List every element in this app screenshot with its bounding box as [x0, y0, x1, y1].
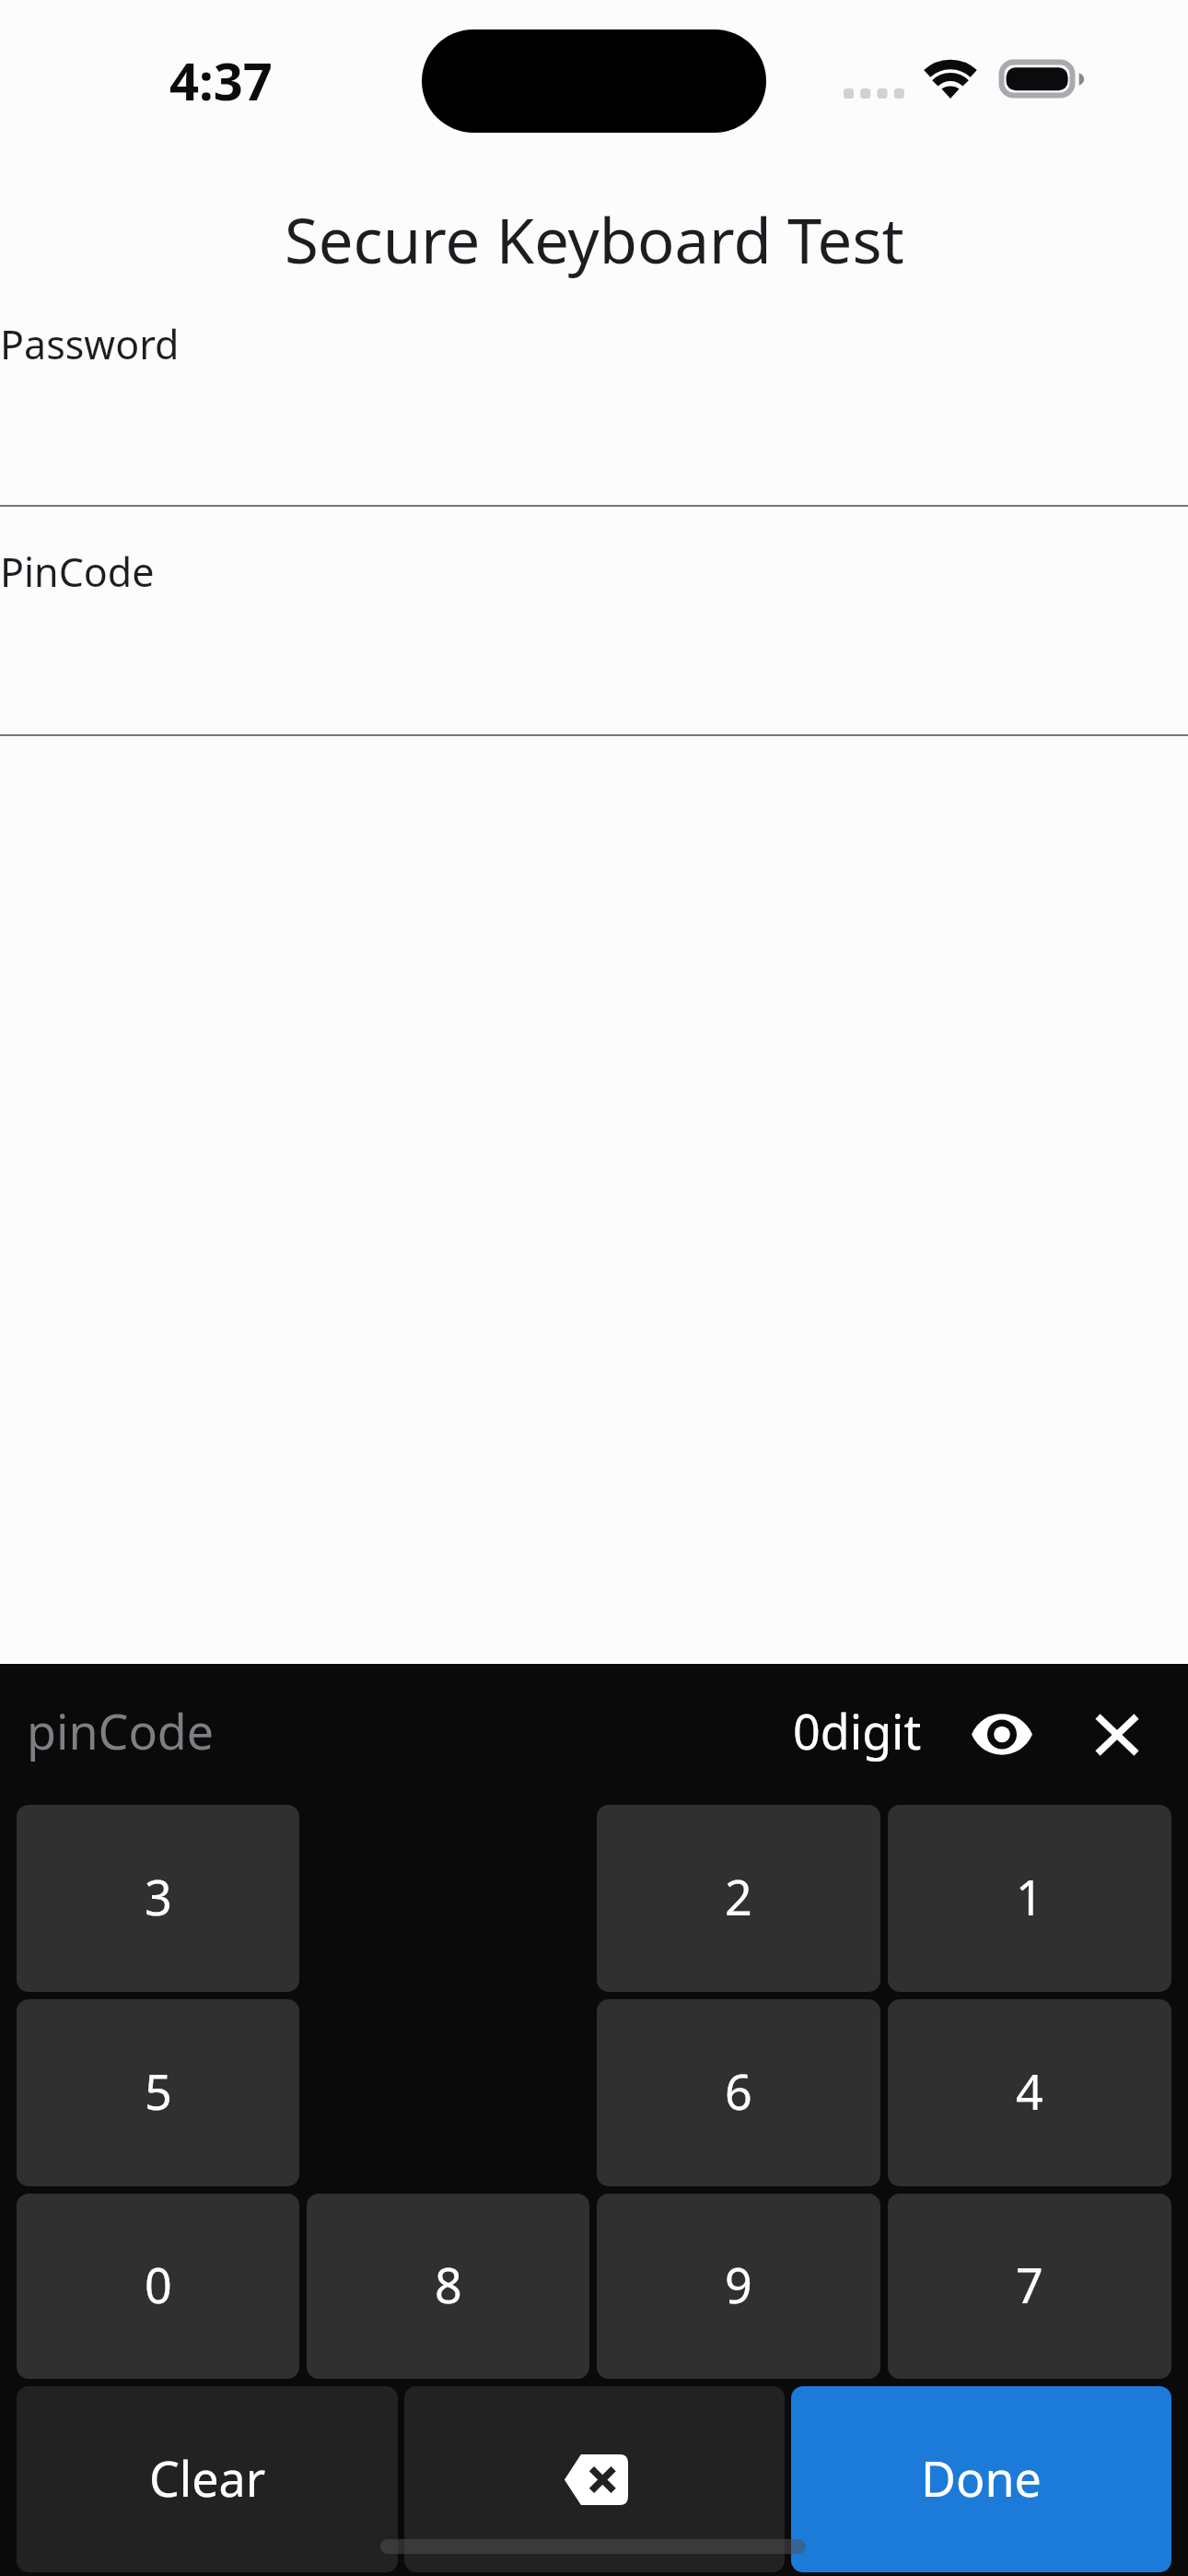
staticText: Password [0, 317, 180, 371]
staticText: PinCode [0, 544, 155, 599]
button[interactable]: 1 [888, 1805, 1171, 1992]
button[interactable]: Backspace [404, 2386, 785, 2572]
button[interactable]: 6 [597, 1999, 880, 2186]
button[interactable]: 3 [17, 1805, 299, 1992]
button[interactable]: Clear [17, 2386, 398, 2572]
button[interactable]: 2 [597, 1805, 880, 1992]
button[interactable]: 5 [17, 1999, 299, 2186]
button[interactable]: Close keyboard [1086, 1664, 1148, 1805]
staticText: Secure Keyboard Test [285, 197, 904, 281]
staticText: 1 [1016, 1864, 1043, 1929]
staticText: 7 [1016, 2252, 1043, 2317]
staticText: 5 [145, 2058, 172, 2124]
button[interactable]: PinCode [0, 507, 1188, 734]
button[interactable]: Done [791, 2386, 1171, 2572]
button[interactable]: 7 [888, 2194, 1171, 2379]
staticText: 4:37 [169, 45, 273, 115]
button[interactable]: 8 [307, 2194, 589, 2379]
button[interactable]: 9 [597, 2194, 880, 2379]
staticText: 0 [145, 2252, 172, 2317]
staticText: 9 [725, 2252, 752, 2317]
button[interactable]: Password [0, 286, 1188, 505]
button[interactable]: 4 [888, 1999, 1171, 2186]
button[interactable]: 0 [17, 2194, 299, 2379]
staticText: pinCode [27, 1698, 215, 1763]
button[interactable]: Show pin code [962, 1664, 1042, 1805]
staticText: 4 [1016, 2058, 1043, 2124]
staticText: 6 [725, 2058, 752, 2124]
staticText: 8 [435, 2252, 462, 2317]
staticText: 3 [145, 1864, 172, 1929]
staticText: 0digit [793, 1698, 922, 1763]
staticText: 2 [725, 1864, 752, 1929]
staticText: Done [921, 2445, 1042, 2511]
staticText: Clear [149, 2445, 266, 2511]
